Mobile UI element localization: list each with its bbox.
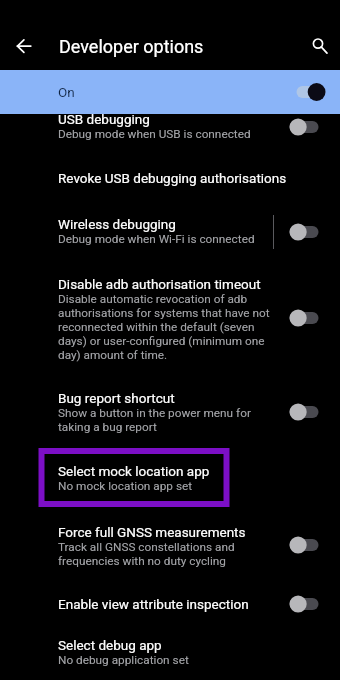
button[interactable]: Turn on xyxy=(289,401,319,423)
button[interactable]: Wireless debugging xyxy=(0,204,340,256)
staticText: Track all GNSS constellations and freque… xyxy=(58,540,272,568)
button[interactable]: USB debugging xyxy=(0,114,340,160)
staticText: Wireless debugging xyxy=(58,216,176,232)
button[interactable]: On xyxy=(0,70,340,114)
button[interactable]: Force full GNSS measurements xyxy=(0,502,340,574)
button[interactable]: Enable view attribute inspection xyxy=(0,574,340,616)
button[interactable]: Search xyxy=(302,30,334,62)
staticText: Disable adb authorisation timeout xyxy=(58,276,261,292)
button[interactable]: Turn on xyxy=(289,221,319,243)
button[interactable]: Disable adb authorisation timeout xyxy=(0,256,340,370)
staticText: Force full GNSS measurements xyxy=(58,524,246,540)
button[interactable]: Turn on xyxy=(289,534,319,556)
staticText: Enable view attribute inspection xyxy=(58,596,249,612)
button[interactable]: Navigate up xyxy=(8,30,40,62)
button[interactable]: Turn on xyxy=(289,307,319,329)
button[interactable]: Turn off xyxy=(296,81,326,103)
staticText: Disable automatic revocation of adb auth… xyxy=(58,292,272,362)
button[interactable]: Select mock location app xyxy=(0,442,340,502)
staticText: On xyxy=(58,84,75,100)
staticText: No mock location app set xyxy=(58,479,193,493)
button[interactable]: Revoke USB debugging authorisations xyxy=(0,160,340,204)
staticText: Show a button in the power menu for taki… xyxy=(58,406,272,434)
staticText: Developer options xyxy=(59,36,204,57)
staticText: Select debug app xyxy=(58,637,162,653)
staticText: Debug mode when USB is connected xyxy=(58,127,251,141)
button[interactable]: Turn on xyxy=(289,116,319,138)
staticText: USB debugging xyxy=(58,111,150,127)
button[interactable]: Bug report shortcut xyxy=(0,370,340,442)
staticText: Revoke USB debugging authorisations xyxy=(58,170,287,186)
button[interactable]: Turn on xyxy=(289,593,319,615)
staticText: Bug report shortcut xyxy=(58,390,175,406)
staticText: No debug application set xyxy=(58,653,189,667)
staticText: Debug mode when Wi-Fi is connected xyxy=(58,232,255,246)
button[interactable]: Select debug app xyxy=(0,616,340,676)
staticText: Select mock location app xyxy=(58,463,210,479)
